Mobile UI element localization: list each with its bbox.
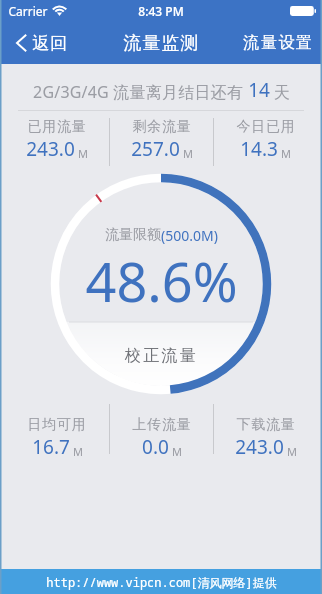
staticText: M xyxy=(172,444,182,459)
staticText: M xyxy=(281,146,291,161)
staticText: 校正流量 xyxy=(125,346,198,366)
staticText: 8:43 PM xyxy=(138,3,184,19)
button[interactable]: 流量设置 xyxy=(233,22,322,64)
staticText: 243.0 xyxy=(235,434,284,460)
staticText: 0.0 xyxy=(142,434,169,460)
button[interactable]: 返回 xyxy=(0,22,76,64)
staticText: 下载流量 xyxy=(236,416,296,434)
staticText: 流量设置 xyxy=(243,33,314,53)
staticText: M xyxy=(73,444,83,459)
button[interactable]: 校正流量 xyxy=(95,340,228,372)
staticText: M xyxy=(78,146,88,161)
staticText: M xyxy=(287,444,297,459)
staticText: 14 xyxy=(248,77,270,103)
staticText: (500.0M) xyxy=(161,226,218,245)
staticText: 天 xyxy=(274,83,290,103)
staticText: http://www.vipcn.com[清风网络]提供 xyxy=(46,574,277,590)
staticText: 2G/3G/4G 流量离月结日还有 xyxy=(33,81,243,103)
staticText: 剩余流量 xyxy=(132,118,192,136)
staticText: Carrier xyxy=(8,3,48,19)
staticText: 257.0 xyxy=(131,136,180,162)
staticText: M xyxy=(183,146,193,161)
staticText: 14.3 xyxy=(240,136,278,162)
staticText: 已用流量 xyxy=(27,118,87,136)
staticText: 流量限额 xyxy=(105,226,161,244)
staticText: 上传流量 xyxy=(132,416,192,434)
staticText: 流量监测 xyxy=(123,32,199,55)
staticText: 243.0 xyxy=(26,136,75,162)
staticText: 返回 xyxy=(32,33,68,54)
staticText: 日均可用 xyxy=(27,416,87,434)
staticText: 16.7 xyxy=(32,434,70,460)
staticText: 48.6% xyxy=(85,244,238,318)
staticText: 今日已用 xyxy=(236,118,296,136)
